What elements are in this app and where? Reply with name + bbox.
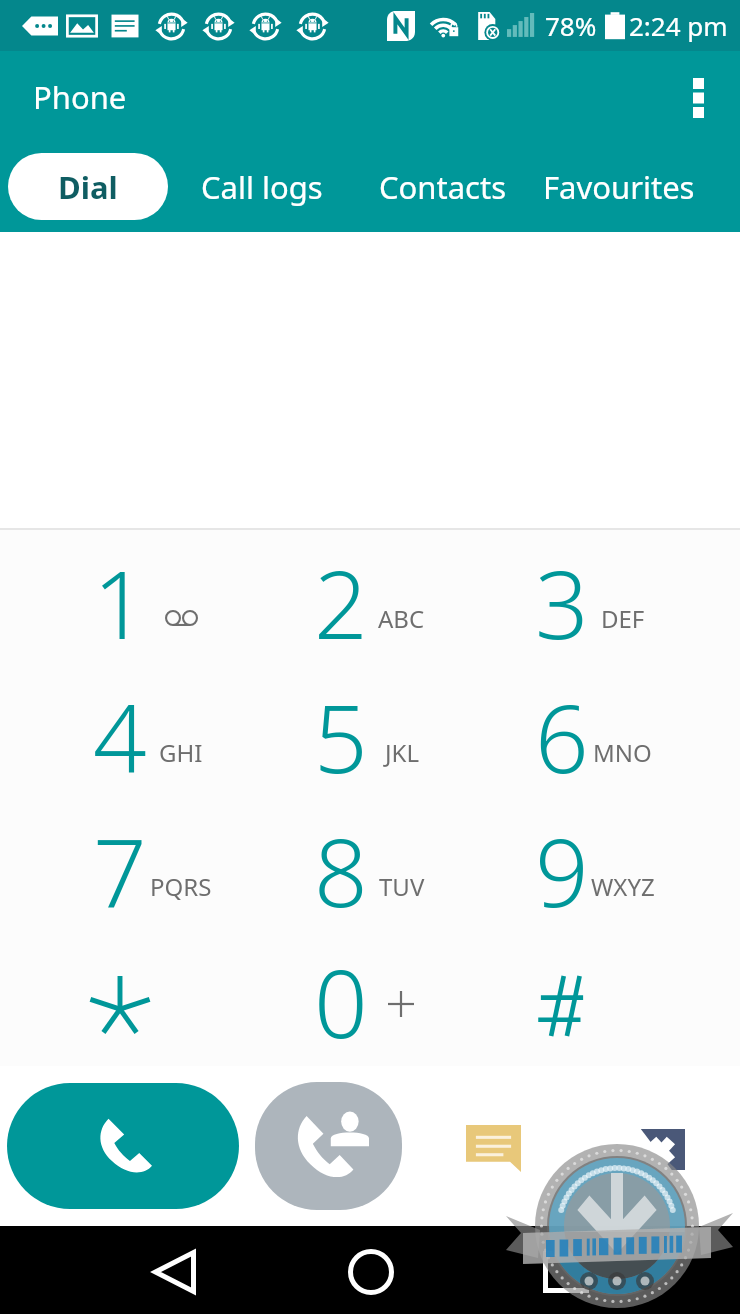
button[interactable]: Recents [530,1236,602,1308]
staticText: 3 [535,539,589,667]
staticText: ABC [378,602,425,635]
button[interactable]: 1 [10,536,230,670]
staticText: 9 [535,807,589,935]
button[interactable]: Add contact [255,1082,402,1210]
staticText: 7 [93,807,147,935]
staticText: Call logs [201,166,323,208]
button[interactable]: 8 [230,804,451,938]
button[interactable]: Favourites [543,153,695,220]
staticText: DEF [601,602,645,635]
staticText: 4 [93,673,147,801]
button[interactable]: 5 [230,670,451,804]
staticText: JKL [385,736,419,769]
button[interactable]: Home [335,1236,407,1308]
staticText: 0 [314,938,368,1066]
button[interactable]: More options [672,74,724,126]
staticText: 78% [545,8,597,43]
button[interactable]: Contacts [379,153,507,220]
staticText: 2:24 pm [629,8,728,43]
staticText: Dial [58,166,118,208]
button[interactable]: Back [138,1236,210,1308]
staticText: 2 [314,539,368,667]
staticText: TUV [379,870,425,903]
button[interactable] [451,938,672,1066]
button[interactable]: 7 [10,804,230,938]
button[interactable]: Call [7,1083,239,1209]
staticText: 1 [93,539,147,667]
staticText: Phone [33,76,127,118]
staticText: WXYZ [591,870,655,903]
staticText: 6 [535,673,589,801]
button[interactable]: 3 [451,536,672,670]
button[interactable]: Call logs [201,153,323,220]
staticText: GHI [159,736,203,769]
button[interactable]: 9 [451,804,672,938]
staticText: Contacts [379,166,507,208]
button[interactable]: Dial [8,153,168,220]
button[interactable]: 6 [451,670,672,804]
staticText: 8 [314,807,368,935]
staticText: PQRS [150,870,212,903]
button[interactable] [10,938,230,1066]
button[interactable]: 4 [10,670,230,804]
button[interactable]: 0 [230,938,451,1066]
button[interactable]: 2 [230,536,451,670]
staticText: 5 [314,673,368,801]
staticText: Favourites [543,166,695,208]
staticText: MNO [593,736,652,769]
